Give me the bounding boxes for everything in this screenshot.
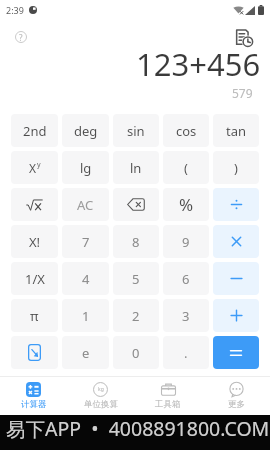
button[interactable]: 9	[163, 225, 209, 258]
button[interactable]: Divide	[213, 188, 259, 221]
staticText: .	[184, 344, 188, 362]
staticText: 0	[132, 344, 140, 362]
other: Hide keyboard	[28, 344, 41, 361]
button[interactable]: Plus	[213, 299, 259, 332]
staticText: 9	[182, 233, 190, 251]
button[interactable]: sin	[113, 114, 159, 147]
staticText: %	[179, 193, 194, 216]
button[interactable]: .	[163, 336, 209, 369]
button[interactable]: History	[233, 27, 254, 48]
staticText: 更多	[228, 399, 245, 410]
button[interactable]: 8	[113, 225, 159, 258]
staticText: π	[30, 307, 39, 325]
other: Minus	[229, 271, 244, 286]
button[interactable]: ln	[113, 151, 159, 184]
staticText: 5	[132, 270, 140, 288]
staticText: 1	[82, 307, 90, 325]
button[interactable]: Multiply	[213, 225, 259, 258]
staticText: 2nd	[23, 122, 47, 140]
button[interactable]: 7	[62, 225, 109, 258]
button[interactable]: X	[11, 151, 58, 184]
button[interactable]: 2nd	[11, 114, 58, 147]
button[interactable]: 工具箱	[134, 377, 202, 415]
staticText: 4	[82, 270, 90, 288]
staticText: 3	[182, 307, 190, 325]
staticText: 单位换算	[84, 399, 118, 410]
button[interactable]: lg	[62, 151, 109, 184]
button[interactable]: e	[62, 336, 109, 369]
staticText: 计算器	[21, 399, 47, 410]
button[interactable]: 1	[62, 299, 109, 332]
staticText: (	[184, 159, 188, 177]
button[interactable]: Backspace	[113, 188, 159, 221]
staticText: ln	[130, 159, 142, 177]
button[interactable]: 2	[113, 299, 159, 332]
staticText: X!	[29, 233, 41, 251]
button[interactable]: X!	[11, 225, 58, 258]
staticText: cos	[176, 122, 197, 140]
staticText: ?	[19, 32, 23, 43]
button[interactable]: 6	[163, 262, 209, 295]
staticText: deg	[74, 122, 98, 140]
other: Backspace	[127, 198, 145, 211]
staticText: 2	[132, 307, 140, 325]
staticText: 123+456	[136, 43, 261, 85]
staticText: 工具箱	[155, 399, 181, 410]
button[interactable]: AC	[62, 188, 109, 221]
button[interactable]: 0	[113, 336, 159, 369]
staticText: AC	[77, 196, 94, 214]
button[interactable]: 更多	[202, 377, 270, 415]
staticText: 8	[132, 233, 140, 251]
button[interactable]: Minus	[213, 262, 259, 295]
button[interactable]	[11, 188, 58, 221]
staticText: sin	[127, 122, 145, 140]
other: Multiply	[229, 234, 244, 249]
staticText: kg	[98, 386, 104, 393]
staticText: 1/X	[25, 270, 45, 288]
staticText: X	[29, 160, 37, 176]
button[interactable]: π	[11, 299, 58, 332]
other: Plus	[229, 308, 244, 323]
button[interactable]: Equals	[213, 336, 259, 369]
button[interactable]: %	[163, 188, 209, 221]
staticText: y	[37, 160, 41, 170]
button[interactable]: kg	[67, 377, 134, 415]
button[interactable]: )	[213, 151, 259, 184]
button[interactable]: 4	[62, 262, 109, 295]
button[interactable]: Help	[9, 25, 33, 49]
button[interactable]: Hide keyboard	[11, 336, 58, 369]
staticText: lg	[80, 159, 92, 177]
staticText: e	[82, 344, 90, 362]
button[interactable]: 5	[113, 262, 159, 295]
button[interactable]: 计算器	[0, 377, 67, 415]
staticText: 7	[82, 233, 90, 251]
button[interactable]: (	[163, 151, 209, 184]
staticText: 易下APP • 4008891800.COM	[6, 415, 270, 442]
staticText: 6	[182, 270, 190, 288]
button[interactable]: 1/X	[11, 262, 58, 295]
button[interactable]: cos	[163, 114, 209, 147]
button[interactable]: tan	[213, 114, 259, 147]
staticText: )	[234, 159, 238, 177]
button[interactable]: 3	[163, 299, 209, 332]
other: Divide	[229, 197, 244, 212]
staticText: tan	[226, 122, 247, 140]
staticText: 579	[232, 85, 253, 101]
other: Equals	[228, 345, 244, 361]
button[interactable]: deg	[62, 114, 109, 147]
staticText: 2:39	[6, 4, 24, 16]
